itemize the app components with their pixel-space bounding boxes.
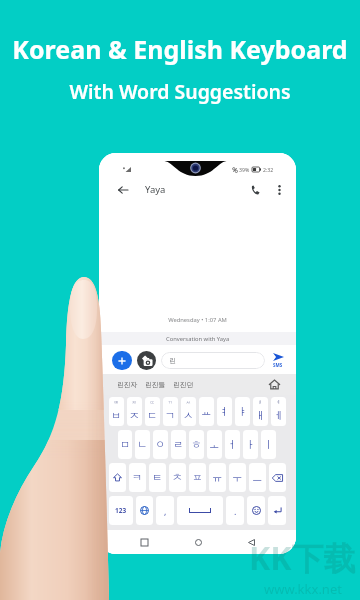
button[interactable]: 린진들 (145, 380, 166, 389)
button[interactable]: Back (243, 534, 259, 550)
button[interactable]: ㅗ (207, 430, 222, 459)
staticText: Conversation with Yaya (166, 335, 230, 343)
button[interactable]: ㅑ (235, 397, 250, 426)
staticText: 린 (169, 356, 176, 365)
button[interactable]: ㅆ (181, 397, 196, 426)
button[interactable]: ㅊ (169, 463, 186, 492)
staticText: ㅃ (114, 400, 119, 406)
staticText: ㅣ (263, 438, 274, 451)
button[interactable]: ㅌ (149, 463, 166, 492)
button[interactable]: ㅇ (153, 430, 168, 459)
staticText: ㅍ (192, 471, 203, 484)
button[interactable] (247, 496, 265, 525)
staticText: SMS (273, 362, 283, 368)
button[interactable]: ㅓ (225, 430, 240, 459)
staticText: ㅅ (183, 409, 194, 422)
staticText: ㅈ (129, 409, 140, 422)
staticText: , (164, 505, 167, 517)
button[interactable]: Camera (137, 351, 156, 370)
button[interactable]: ㄴ (135, 430, 150, 459)
staticText: ㄱ (165, 409, 176, 422)
staticText: ㄴ (137, 438, 148, 451)
staticText: 린진던 (173, 380, 194, 389)
button[interactable]: ㄲ (163, 397, 178, 426)
staticText: www.kkx.net (264, 580, 342, 598)
staticText: ㅏ (245, 438, 256, 451)
staticText: Yaya (145, 183, 166, 196)
button[interactable]: ㅒ (253, 397, 268, 426)
button[interactable]: Call (247, 181, 265, 199)
button[interactable]: ㅍ (189, 463, 206, 492)
button[interactable] (109, 463, 126, 492)
staticText: 2:32 (263, 166, 274, 173)
staticText: ㅕ (219, 405, 230, 418)
staticText: ㅂ (111, 409, 122, 422)
button[interactable]: ㅠ (209, 463, 226, 492)
button[interactable] (136, 496, 153, 525)
staticText: ㅓ (227, 438, 238, 451)
button[interactable]: ㅏ (243, 430, 258, 459)
staticText: 123 (115, 506, 127, 515)
button[interactable]: ㅕ (217, 397, 232, 426)
button[interactable]: Send SMS (267, 353, 289, 368)
staticText: ㅖ (276, 400, 281, 406)
staticText: ㄷ (147, 409, 158, 422)
staticText: ㅇ (155, 438, 166, 451)
staticText: Korean & English Keyboard (12, 32, 348, 66)
button[interactable]: Keyboard home (269, 379, 280, 390)
button[interactable]: ㅖ (271, 397, 286, 426)
staticText: ㅊ (172, 471, 183, 484)
button[interactable]: ㅁ (118, 430, 132, 459)
button[interactable]: Attach (112, 351, 132, 370)
button[interactable]: Back (113, 180, 132, 199)
button[interactable] (177, 496, 223, 525)
staticText: ㅒ (258, 400, 263, 406)
staticText: ㅛ (201, 405, 212, 418)
staticText: ㄲ (168, 400, 173, 406)
staticText: 39% (239, 166, 250, 173)
staticText: KK下载 (249, 536, 356, 580)
staticText: 린진자 (117, 380, 138, 389)
staticText: ㅜ (232, 471, 243, 484)
button[interactable]: ㅋ (129, 463, 146, 492)
staticText: 린진들 (145, 380, 166, 389)
button[interactable]: , (156, 496, 174, 525)
button[interactable]: 123 (109, 496, 133, 525)
button[interactable]: Home (190, 534, 206, 550)
staticText: With Word Suggestions (69, 78, 291, 105)
button[interactable]: Recent apps (136, 534, 152, 550)
button[interactable] (269, 463, 286, 492)
button[interactable]: ㅎ (189, 430, 204, 459)
button[interactable]: More options (272, 183, 286, 197)
staticText: ㅡ (252, 471, 263, 484)
staticText: ㅋ (132, 471, 143, 484)
button[interactable]: . (226, 496, 244, 525)
staticText: . (234, 505, 237, 517)
button[interactable]: ㅡ (249, 463, 266, 492)
button[interactable]: ㅛ (199, 397, 214, 426)
staticText: ㅐ (255, 409, 266, 422)
staticText: ㄸ (150, 400, 155, 406)
button[interactable]: ㅉ (127, 397, 142, 426)
staticText: ㅗ (209, 438, 220, 451)
button[interactable]: ㅣ (261, 430, 276, 459)
staticText: ㅠ (212, 471, 223, 484)
staticText: ㅎ (191, 438, 202, 451)
button[interactable]: 린 (169, 352, 265, 369)
staticText: ㅁ (120, 438, 131, 451)
button[interactable]: 린진자 (117, 380, 138, 389)
staticText: ㅔ (273, 409, 284, 422)
staticText: ㄹ (173, 438, 184, 451)
button[interactable]: 린진던 (173, 380, 194, 389)
button[interactable] (268, 496, 286, 525)
button[interactable]: ㄸ (145, 397, 160, 426)
button[interactable]: ㄹ (171, 430, 186, 459)
staticText: ㅑ (237, 405, 248, 418)
button[interactable]: ㅃ (109, 397, 124, 426)
staticText: ㅌ (152, 471, 163, 484)
button[interactable]: ㅜ (229, 463, 246, 492)
staticText: Wednesday • 1:07 AM (99, 316, 296, 324)
staticText: ㅉ (132, 400, 137, 406)
staticText: ㅆ (186, 400, 191, 406)
